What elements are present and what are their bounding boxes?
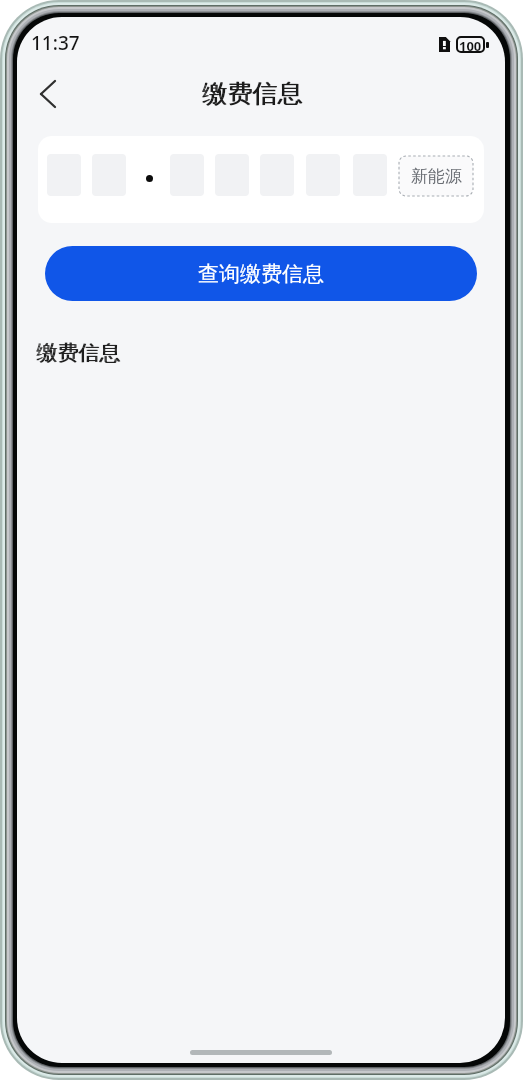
staticText: 新能源	[411, 166, 462, 187]
staticText: 查询缴费信息	[198, 261, 324, 287]
staticText: 缴费信息	[203, 78, 303, 109]
staticText: 缴费信息	[202, 78, 302, 109]
staticText: 缴费信息	[36, 340, 120, 366]
staticText: 11:37	[31, 30, 80, 56]
button[interactable]: 新能源	[399, 156, 473, 196]
button[interactable]: 查询缴费信息	[45, 246, 477, 301]
staticText: 缴费信息	[37, 340, 121, 366]
button[interactable]: Back	[24, 70, 72, 118]
staticText: 100	[459, 37, 482, 52]
